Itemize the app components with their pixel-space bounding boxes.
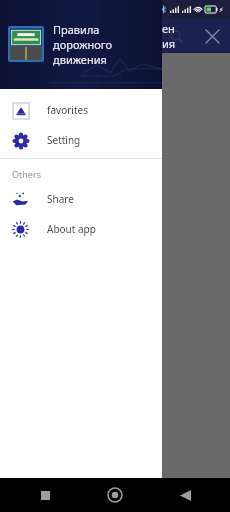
staticText: Others [12, 168, 41, 180]
staticText: ения [162, 21, 180, 51]
staticText: Setting [47, 133, 81, 147]
button[interactable]: Recents [28, 478, 62, 512]
button[interactable]: Back [168, 478, 202, 512]
button[interactable] [0, 177, 230, 214]
button[interactable] [0, 57, 230, 94]
button[interactable]: Search [162, 22, 190, 50]
button[interactable] [0, 97, 230, 134]
staticText: Share [47, 192, 74, 206]
staticText: ⚡ [219, 6, 224, 13]
button[interactable]: Close [198, 22, 226, 50]
button[interactable]: Home [98, 478, 132, 512]
button[interactable]: favorites [0, 95, 162, 125]
button[interactable]: Share [0, 184, 162, 214]
staticText: About app [47, 222, 96, 236]
button[interactable]: Setting [0, 125, 162, 155]
button[interactable] [0, 137, 230, 174]
button[interactable]: About app [0, 214, 162, 244]
staticText: Правила дорожного движения [53, 22, 156, 67]
staticText: favorites [47, 103, 88, 117]
